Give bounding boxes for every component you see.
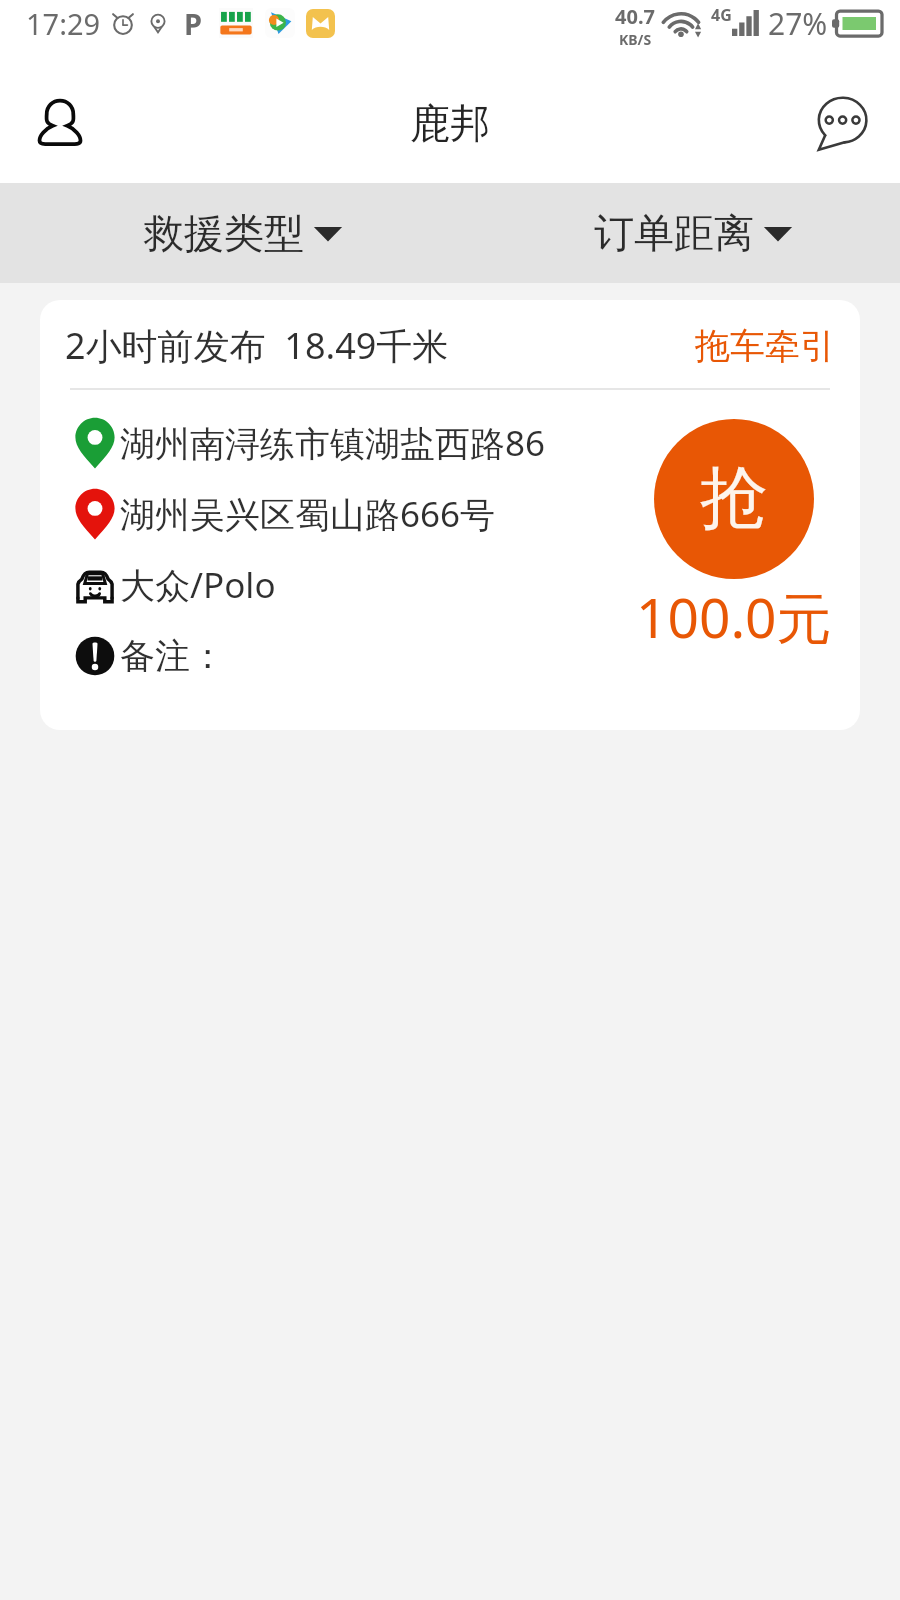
staticText: 湖州南浔练市镇湖盐西路86 bbox=[120, 419, 546, 467]
staticText: P bbox=[184, 4, 203, 43]
staticText: 40.7 bbox=[615, 3, 655, 30]
staticText: 订单距离 bbox=[594, 208, 754, 258]
button[interactable]: Profile bbox=[20, 83, 100, 163]
button[interactable]: 抢单 bbox=[654, 419, 814, 579]
staticText: 救援类型 bbox=[144, 208, 304, 258]
staticText: 27% bbox=[768, 3, 828, 44]
staticText: 备注： bbox=[120, 634, 225, 678]
staticText: KB/S bbox=[619, 30, 652, 49]
staticText: 鹿邦 bbox=[410, 98, 490, 148]
staticText: 4G bbox=[711, 4, 732, 26]
staticText: 湖州吴兴区蜀山路666号 bbox=[120, 490, 496, 538]
staticText: 大众/Polo bbox=[120, 561, 276, 609]
button[interactable]: 2小时前发布 18.49千米 bbox=[40, 300, 860, 730]
button[interactable]: 订单距离 bbox=[450, 183, 900, 283]
staticText: 拖车牵引 bbox=[695, 324, 835, 368]
button[interactable]: 救援类型 bbox=[0, 183, 450, 283]
button[interactable]: Messages bbox=[800, 83, 880, 163]
staticText: 17:29 bbox=[26, 4, 101, 43]
staticText: 抢 bbox=[700, 456, 768, 542]
staticText: 100.0元 bbox=[636, 579, 832, 654]
staticText: 2小时前发布 18.49千米 bbox=[65, 321, 449, 370]
